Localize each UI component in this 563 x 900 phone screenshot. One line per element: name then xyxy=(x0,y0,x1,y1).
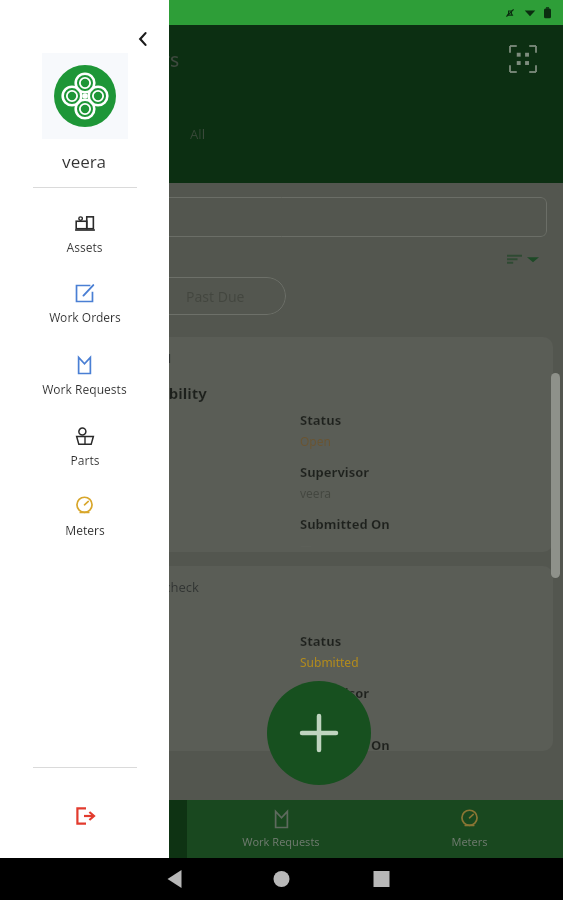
staticText: Status xyxy=(300,411,342,429)
staticText: Today xyxy=(52,287,91,306)
button[interactable]: Work Requests xyxy=(0,353,169,399)
staticText: Status xyxy=(300,632,342,650)
button[interactable]: Parts xyxy=(0,423,169,470)
staticText: All xyxy=(190,125,206,143)
button[interactable]: ABB Robot 1 xyxy=(10,337,553,552)
staticText: veera xyxy=(62,150,107,173)
button[interactable]: Search Work Order xyxy=(16,197,547,237)
staticText: ABB Robot 1 xyxy=(97,349,173,367)
button[interactable]: Work Orders xyxy=(0,281,169,327)
staticText: Meters xyxy=(65,522,105,538)
staticText: Assign To xyxy=(62,463,123,481)
button[interactable]: Meters xyxy=(375,800,563,858)
button[interactable]: Work Requests xyxy=(187,800,375,858)
button[interactable]: Assets xyxy=(0,210,169,257)
button[interactable]: Sort xyxy=(502,247,543,271)
staticText: veera xyxy=(300,485,332,501)
button[interactable]: Log out xyxy=(65,796,105,836)
staticText: Submitted On xyxy=(300,736,390,751)
button[interactable]: Scan QR code xyxy=(507,43,539,75)
staticText: veera xyxy=(300,706,332,722)
staticText: Work Requests xyxy=(42,381,127,397)
staticText: Parts xyxy=(70,452,100,468)
button[interactable]: Work Orders xyxy=(0,800,187,858)
button[interactable]: Today xyxy=(16,277,126,315)
staticText: Search Work Order xyxy=(28,208,153,227)
staticText: Submitted On xyxy=(300,515,390,533)
staticText: Open xyxy=(300,433,331,449)
staticText: Document check xyxy=(97,578,200,596)
button[interactable]: All xyxy=(190,125,206,143)
button[interactable]: Meters xyxy=(0,494,169,540)
button[interactable]: Past Due xyxy=(144,277,286,315)
staticText: Assets xyxy=(66,239,103,255)
button[interactable]: Add work order xyxy=(267,681,371,785)
staticText: Priority xyxy=(62,411,111,429)
button[interactable]: Document check xyxy=(10,566,553,751)
staticText: Low xyxy=(62,433,85,449)
staticText: Past Due xyxy=(186,287,245,306)
staticText: Due Date xyxy=(62,515,122,533)
staticText: Supervisor xyxy=(300,463,370,481)
staticText: Supervisor xyxy=(300,684,370,702)
staticText: Submitted xyxy=(300,654,359,670)
button[interactable]: Close drawer xyxy=(129,25,157,53)
staticText: Work Orders xyxy=(49,309,121,325)
staticText: support xyxy=(62,485,107,501)
staticText: Work Requests xyxy=(242,834,320,849)
staticText: Meters xyxy=(451,834,488,849)
staticText: Work Orders xyxy=(64,47,180,73)
staticText: Check Machine Stability xyxy=(28,383,207,403)
